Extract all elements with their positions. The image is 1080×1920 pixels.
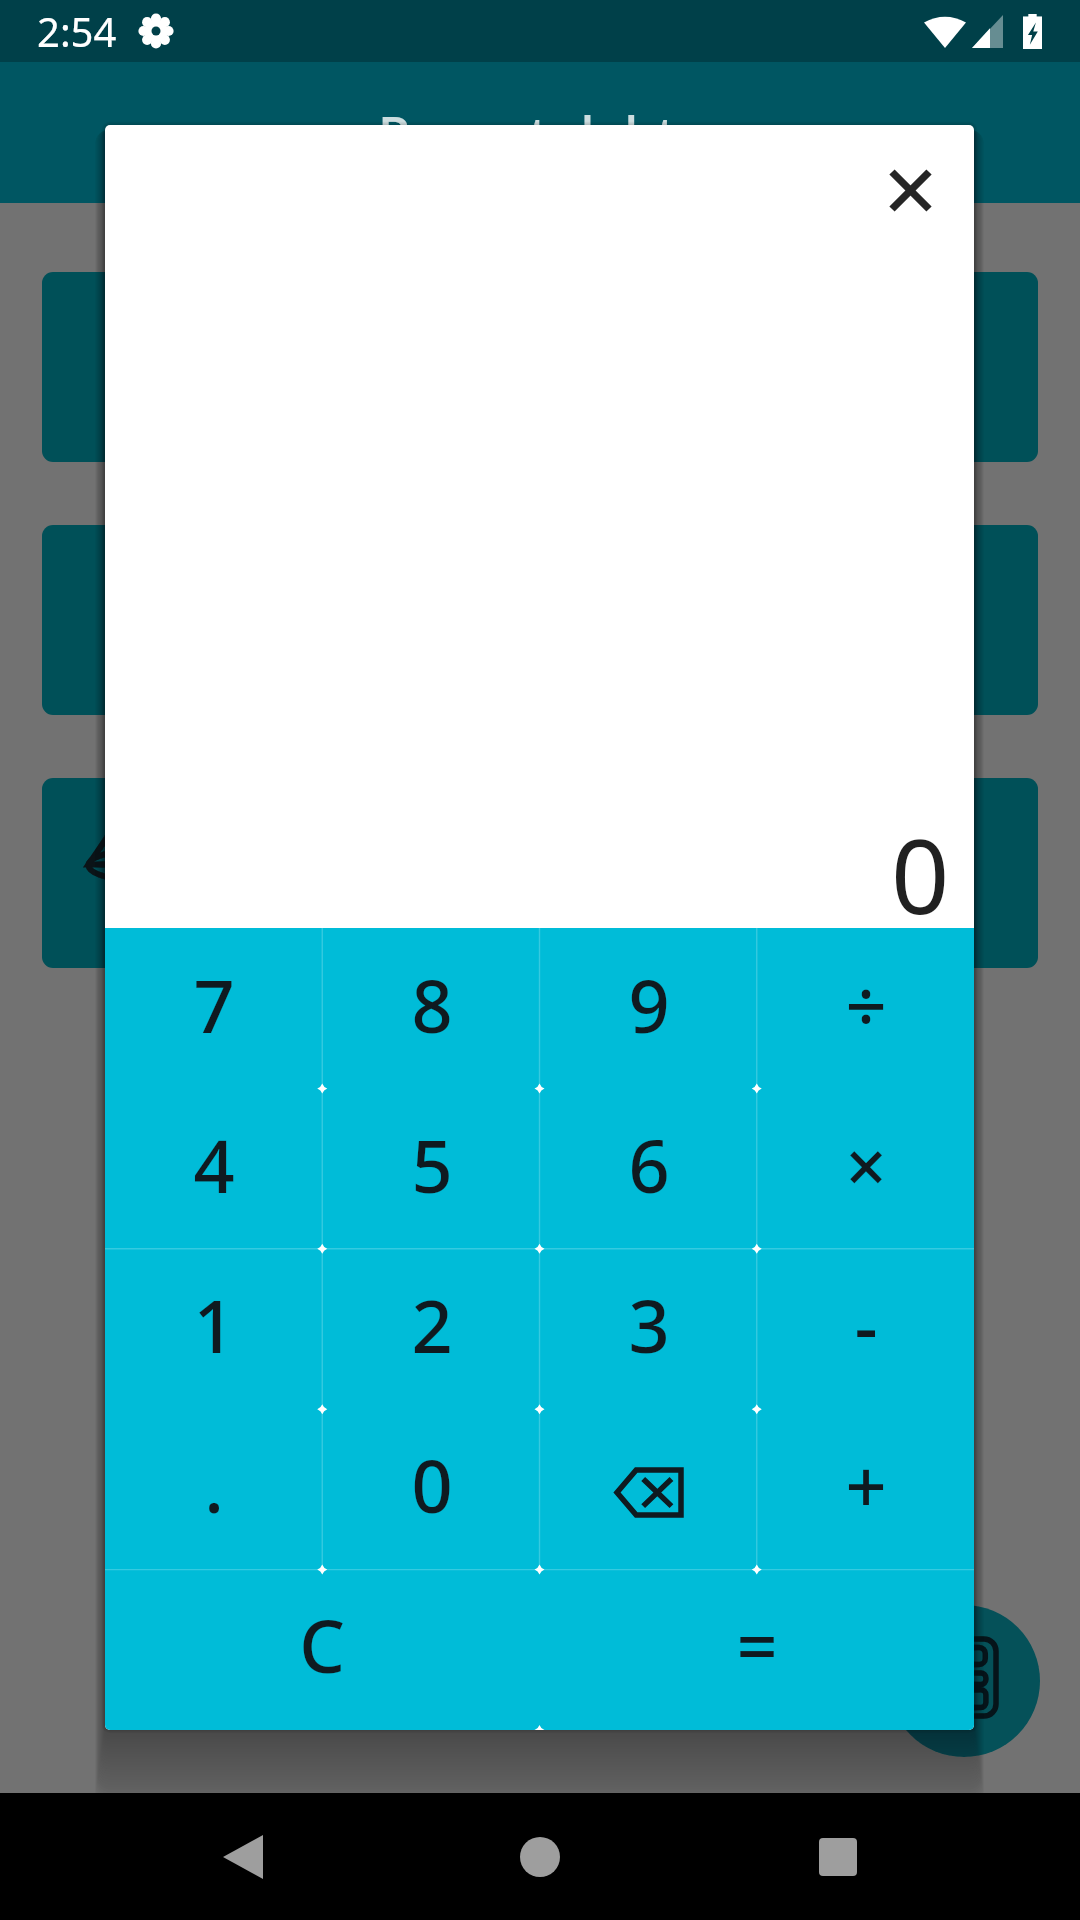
- button[interactable]: 2: [323, 1248, 540, 1408]
- button[interactable]: [42, 272, 1038, 462]
- button[interactable]: ×: [757, 1088, 974, 1248]
- button[interactable]: Backspace: [540, 1408, 757, 1568]
- staticText: Recent debts: [378, 99, 702, 170]
- button[interactable]: +: [757, 1408, 974, 1568]
- staticText: 6: [628, 1116, 670, 1214]
- button[interactable]: C: [105, 1568, 539, 1728]
- button[interactable]: 0: [323, 1408, 540, 1568]
- staticText: 4: [193, 1116, 235, 1214]
- staticText: ×: [845, 1116, 887, 1214]
- button[interactable]: -: [757, 1248, 974, 1408]
- staticText: 0: [891, 805, 950, 944]
- staticText: 1: [193, 1276, 235, 1374]
- button[interactable]: 4: [105, 1088, 323, 1248]
- button[interactable]: 7: [105, 928, 323, 1088]
- button[interactable]: 1: [105, 1248, 323, 1408]
- button[interactable]: 3: [540, 1248, 757, 1408]
- staticText: 8: [411, 956, 453, 1054]
- button[interactable]: Close: [868, 148, 952, 232]
- button[interactable]: Home: [485, 1802, 595, 1912]
- staticText: 2:54: [37, 4, 117, 58]
- staticText: -: [854, 1276, 878, 1374]
- staticText: 9: [628, 956, 670, 1054]
- staticText: .: [204, 1436, 224, 1534]
- button[interactable]: [42, 778, 1038, 968]
- staticText: C: [299, 1596, 345, 1694]
- button[interactable]: 9: [540, 928, 757, 1088]
- button[interactable]: 6: [540, 1088, 757, 1248]
- button[interactable]: .: [105, 1408, 323, 1568]
- button[interactable]: 8: [323, 928, 540, 1088]
- staticText: =: [736, 1596, 778, 1694]
- staticText: 7: [193, 956, 235, 1054]
- staticText: 2: [411, 1276, 453, 1374]
- button[interactable]: Recent apps: [783, 1802, 893, 1912]
- button[interactable]: ÷: [757, 928, 974, 1088]
- button[interactable]: Back: [188, 1802, 298, 1912]
- staticText: 0: [411, 1436, 453, 1534]
- button[interactable]: =: [539, 1568, 974, 1728]
- staticText: +: [845, 1436, 887, 1534]
- button[interactable]: [42, 525, 1038, 715]
- staticText: ÷: [845, 956, 887, 1054]
- staticText: 3: [628, 1276, 670, 1374]
- button[interactable]: Calculator: [888, 1605, 1040, 1757]
- button[interactable]: 5: [323, 1088, 540, 1248]
- staticText: 5: [411, 1116, 453, 1214]
- other: Settings: [139, 14, 173, 48]
